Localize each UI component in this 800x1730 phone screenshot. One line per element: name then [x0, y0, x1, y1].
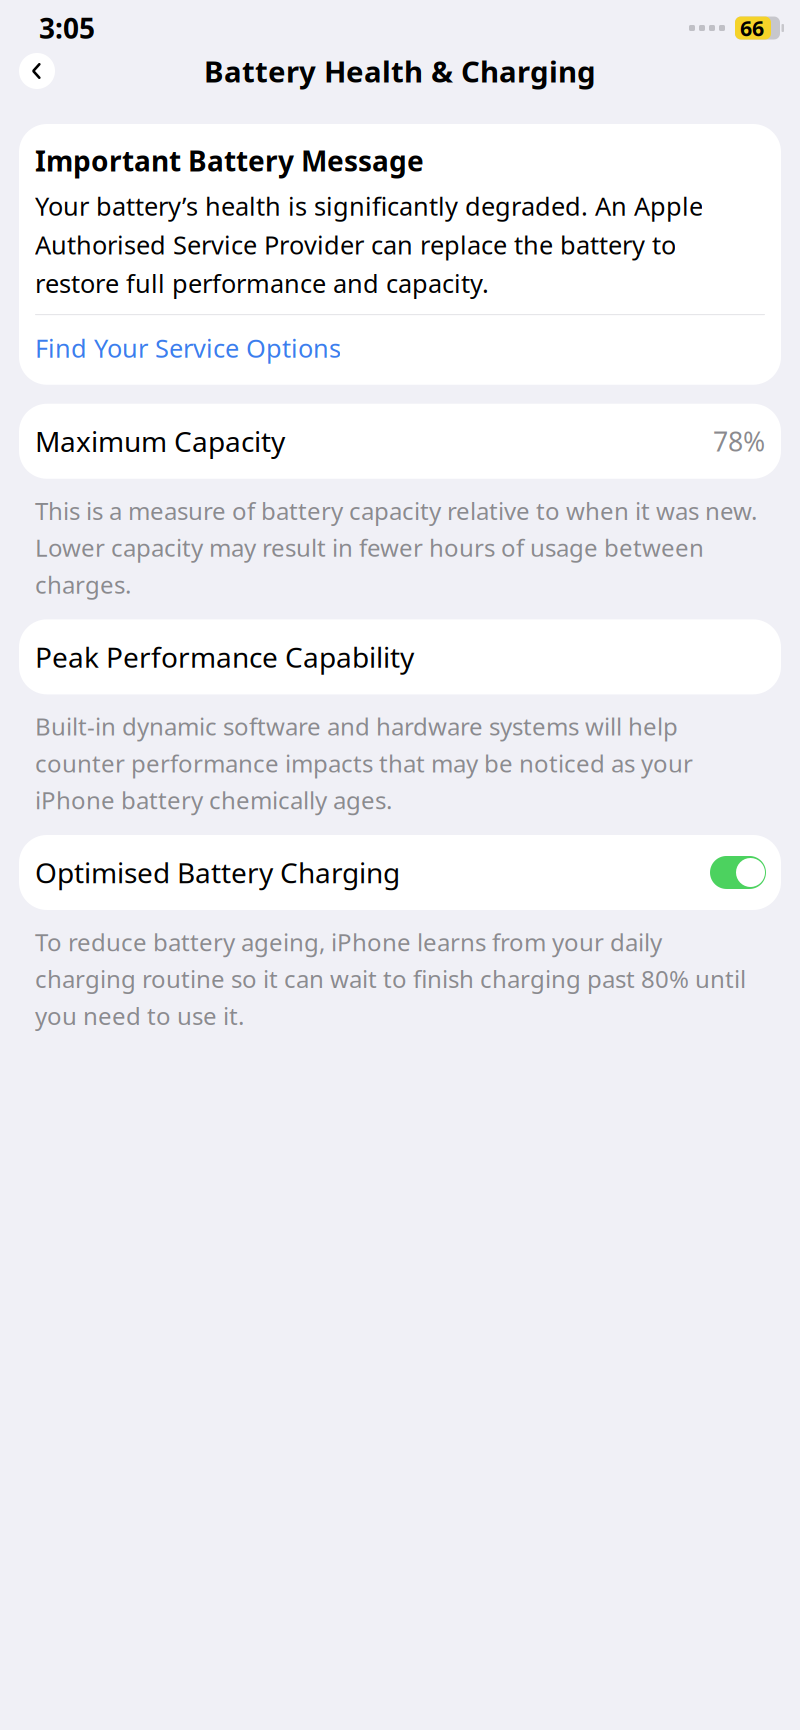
button[interactable]: Peak Performance Capability [19, 619, 781, 694]
staticText: Optimised Battery Charging [35, 854, 400, 891]
button[interactable]: Find Your Service Options [35, 315, 765, 381]
staticText: Battery Health & Charging [204, 51, 596, 90]
button[interactable]: Maximum Capacity [19, 404, 781, 479]
staticText: 78% [713, 423, 765, 459]
button[interactable]: Optimised Battery Charging [19, 835, 781, 910]
staticText: Your battery’s health is significantly d… [35, 189, 703, 300]
staticText: 3:05 [39, 9, 95, 47]
staticText: 66 [740, 14, 764, 42]
button[interactable]: Back [19, 53, 55, 89]
staticText: To reduce battery ageing, iPhone learns … [35, 926, 746, 1032]
staticText: Peak Performance Capability [35, 638, 414, 675]
staticText: Maximum Capacity [35, 423, 285, 460]
staticText: Find Your Service Options [35, 331, 341, 365]
staticText: Important Battery Message [35, 142, 424, 179]
staticText: This is a measure of battery capacity re… [35, 495, 757, 600]
staticText: Built-in dynamic software and hardware s… [35, 710, 693, 816]
